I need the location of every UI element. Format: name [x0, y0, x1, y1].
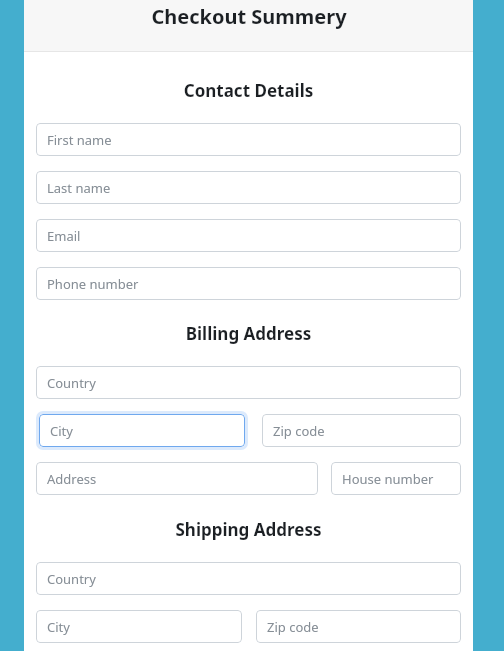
button[interactable]: Zip code	[262, 414, 461, 447]
button[interactable]: Email	[36, 219, 461, 252]
button[interactable]: House number	[331, 462, 461, 495]
button[interactable]: Country	[36, 366, 461, 399]
button[interactable]: Country	[36, 562, 461, 595]
staticText: Zip code	[273, 422, 325, 440]
button[interactable]: City	[39, 414, 245, 447]
button[interactable]: Last name	[36, 171, 461, 204]
staticText: Shipping Address	[36, 518, 461, 541]
button[interactable]: Zip code	[256, 610, 461, 643]
staticText: Address	[47, 470, 97, 488]
staticText: Contact Details	[36, 79, 461, 102]
staticText: Phone number	[47, 275, 139, 293]
staticText: Last name	[47, 179, 111, 197]
staticText: Checkout Summery	[151, 3, 347, 30]
staticText: Country	[47, 374, 96, 392]
staticText: Email	[47, 227, 81, 245]
button[interactable]: Phone number	[36, 267, 461, 300]
staticText: Zip code	[267, 618, 319, 636]
staticText: City	[47, 618, 70, 636]
staticText: Country	[47, 570, 96, 588]
button[interactable]: Address	[36, 462, 318, 495]
staticText: First name	[47, 131, 112, 149]
button[interactable]: First name	[36, 123, 461, 156]
staticText: House number	[342, 470, 434, 488]
staticText: Billing Address	[36, 322, 461, 345]
button[interactable]: City	[36, 610, 242, 643]
staticText: City	[50, 422, 73, 440]
